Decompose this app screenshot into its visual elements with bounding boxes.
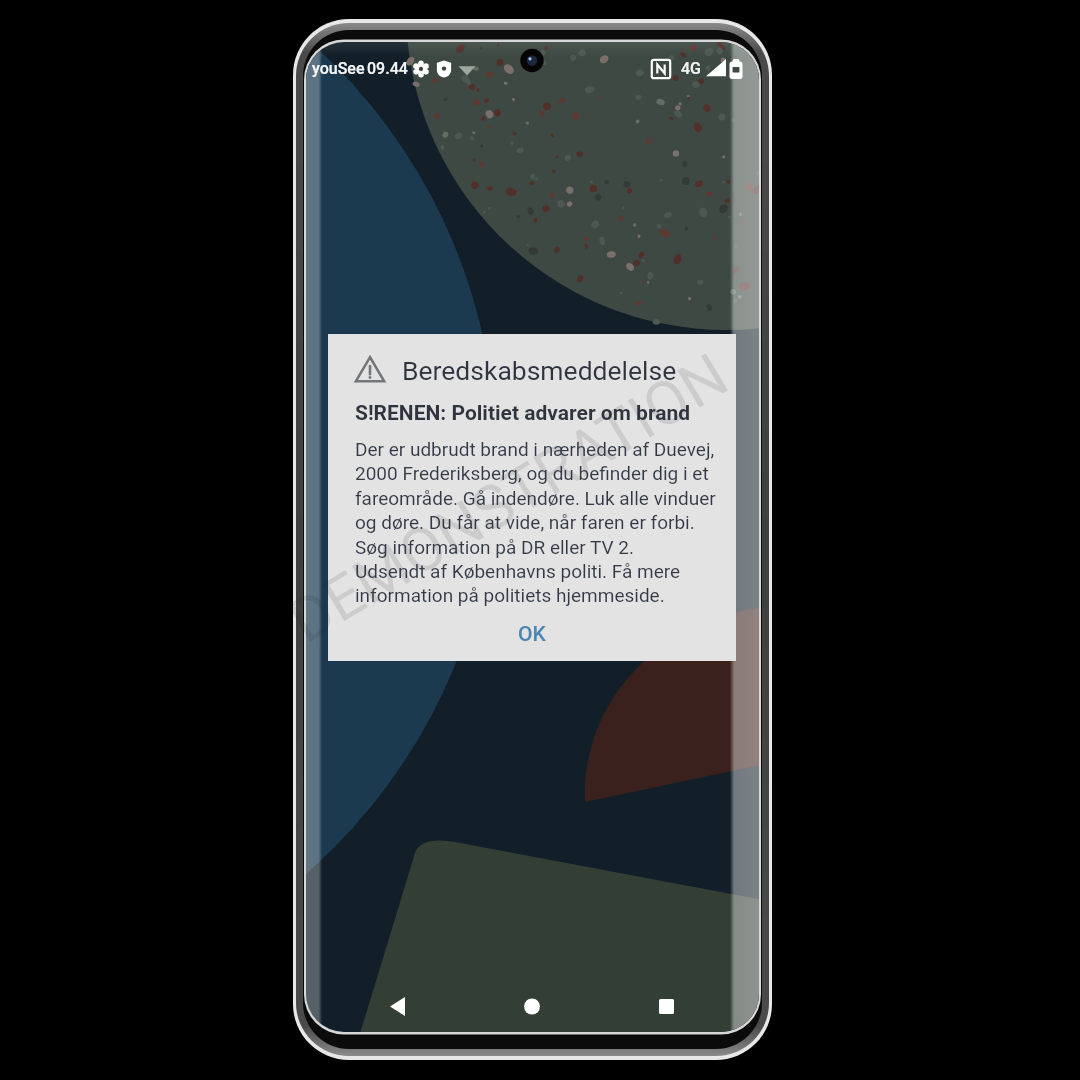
staticText: Søg information på DR eller TV 2. xyxy=(355,536,635,558)
staticText: Beredskabsmeddelelse xyxy=(402,355,677,386)
staticText: S!RENEN: Politiet advarer om brand xyxy=(355,401,691,426)
staticText: Der er udbrudt brand i nærheden af Dueve… xyxy=(355,438,715,460)
staticText: information på politiets hjemmeside. xyxy=(355,584,665,606)
staticText: Udsendt af Københavns politi. Få mere xyxy=(355,560,681,582)
staticText: DEMONSTRATION xyxy=(276,339,741,656)
staticText: 4G xyxy=(681,59,701,78)
staticText: 2000 Frederiksberg, og du befinder dig i… xyxy=(355,462,709,484)
staticText: OK xyxy=(518,622,546,647)
staticText: fareområde. Gå indendøre. Luk alle vindu… xyxy=(355,487,716,509)
staticText: og døre. Du får at vide, når faren er fo… xyxy=(355,511,695,533)
staticText: 09.44 xyxy=(367,59,408,78)
button[interactable]: OK xyxy=(328,609,736,659)
staticText: youSee xyxy=(312,59,365,78)
